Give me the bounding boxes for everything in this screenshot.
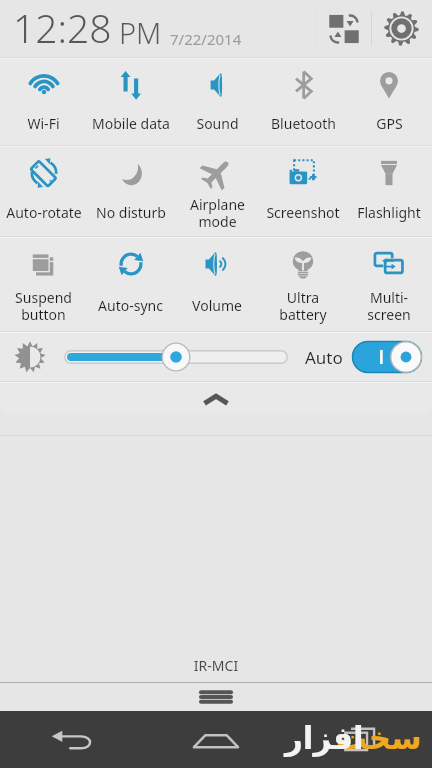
button[interactable]: Multi- screen	[346, 238, 432, 331]
staticText: Suspend button	[15, 288, 72, 324]
button[interactable]: Airplane mode	[174, 147, 260, 236]
staticText: Volume	[192, 296, 242, 315]
staticText: IR-MCI	[0, 656, 432, 675]
staticText: 7/22/2014	[170, 29, 242, 49]
staticText: Auto	[305, 346, 343, 369]
button[interactable]: Collapse	[0, 383, 432, 415]
staticText: Auto-rotate	[6, 203, 82, 222]
staticText: Ultra battery	[279, 288, 327, 324]
button[interactable]: Home	[144, 711, 288, 768]
staticText: افزار	[285, 720, 364, 756]
button[interactable]: Auto-rotate	[0, 147, 87, 236]
button[interactable]: Wi-Fi	[0, 59, 87, 145]
staticText: Mobile data	[92, 114, 170, 133]
staticText: 12:28	[13, 1, 112, 54]
staticText: Bluetooth	[271, 114, 336, 133]
button[interactable]: Volume	[174, 238, 260, 331]
button[interactable]: Flashlight	[346, 147, 432, 236]
staticText: Multi- screen	[367, 288, 411, 324]
staticText: PM	[119, 13, 162, 52]
staticText: Airplane mode	[190, 195, 245, 231]
button[interactable]: Recent apps	[288, 711, 432, 768]
button[interactable]: Settings	[372, 0, 430, 57]
staticText: No disturb	[96, 203, 166, 222]
button[interactable]: Sound	[174, 59, 260, 145]
button[interactable]: Mobile data	[87, 59, 174, 145]
button[interactable]: Auto brightness	[352, 341, 422, 373]
button[interactable]: GPS	[346, 59, 432, 145]
staticText: Flashlight	[357, 203, 421, 222]
staticText: Auto-sync	[98, 296, 163, 315]
staticText: Wi-Fi	[27, 114, 60, 133]
staticText: GPS	[376, 114, 403, 133]
button[interactable]: Auto-sync	[87, 238, 174, 331]
button[interactable]: Bluetooth	[260, 59, 346, 145]
button[interactable]: Handle	[0, 683, 432, 711]
staticText: سخت	[336, 720, 422, 756]
button[interactable]: Ultra battery	[260, 238, 346, 331]
staticText: Sound	[196, 114, 239, 133]
button[interactable]: Back	[0, 711, 144, 768]
button[interactable]: Suspend button	[0, 238, 87, 331]
button[interactable]: Screenshot	[260, 147, 346, 236]
button[interactable]: Rotate screen	[317, 0, 371, 57]
button[interactable]: No disturb	[87, 147, 174, 236]
staticText: Screenshot	[266, 203, 340, 222]
